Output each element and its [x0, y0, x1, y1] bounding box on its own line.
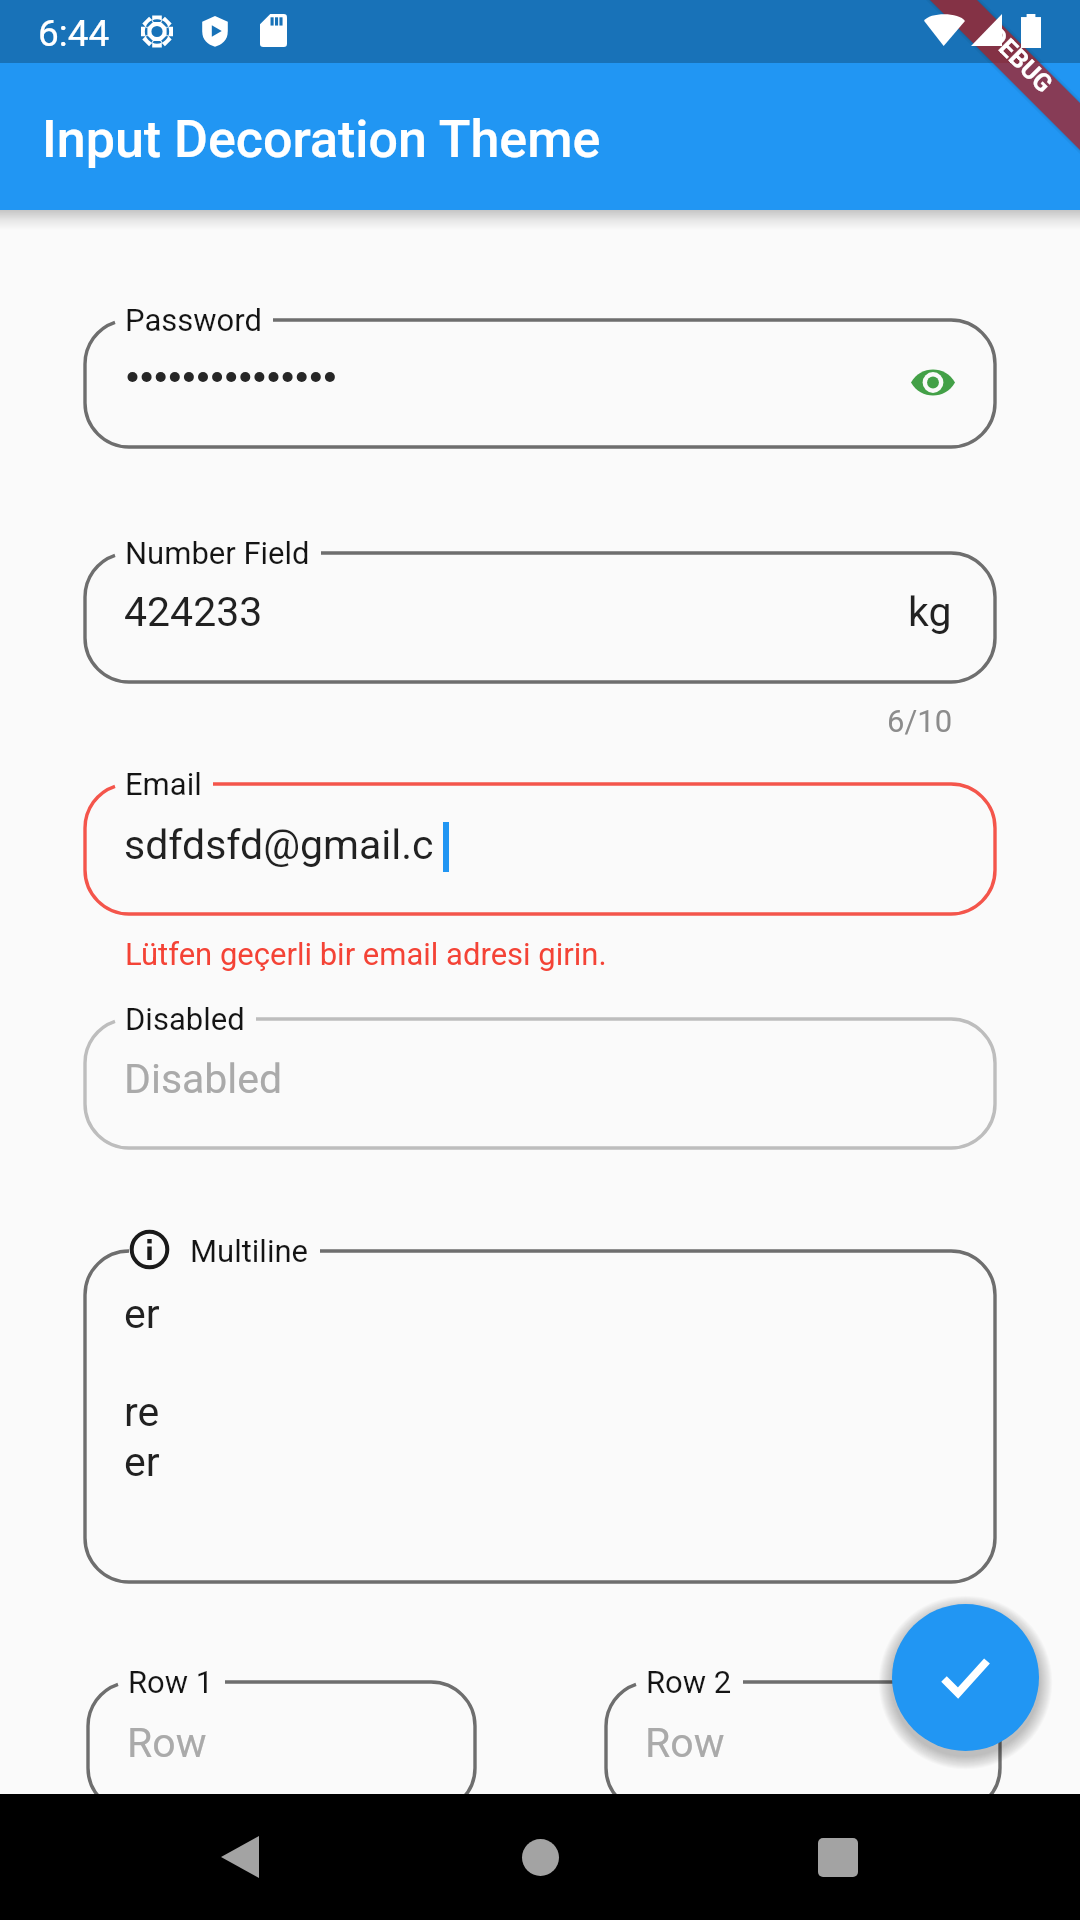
staticText: re — [124, 1388, 160, 1436]
button[interactable]: Submit — [892, 1604, 1039, 1751]
other: Info — [127, 1227, 172, 1272]
staticText: kg — [908, 588, 952, 636]
staticText: Input Decoration Theme — [42, 109, 601, 170]
staticText: Row — [127, 1719, 207, 1767]
staticText: 6:44 — [38, 12, 110, 55]
button[interactable]: Show password — [886, 336, 979, 429]
staticText: er — [124, 1438, 160, 1486]
staticText: 6/10 — [887, 703, 953, 739]
button[interactable]: Recent apps — [758, 1794, 918, 1920]
staticText: 424233 — [124, 588, 263, 636]
staticText: Disabled — [124, 1055, 283, 1103]
button[interactable]: Back — [160, 1794, 320, 1920]
staticText: Row — [645, 1719, 725, 1767]
staticText: Lütfen geçerli bir email adresi girin. — [125, 936, 607, 972]
button[interactable]: Home — [460, 1794, 620, 1920]
staticText: sdfdsfd@gmail.c — [124, 821, 434, 869]
staticText: er — [124, 1290, 160, 1338]
